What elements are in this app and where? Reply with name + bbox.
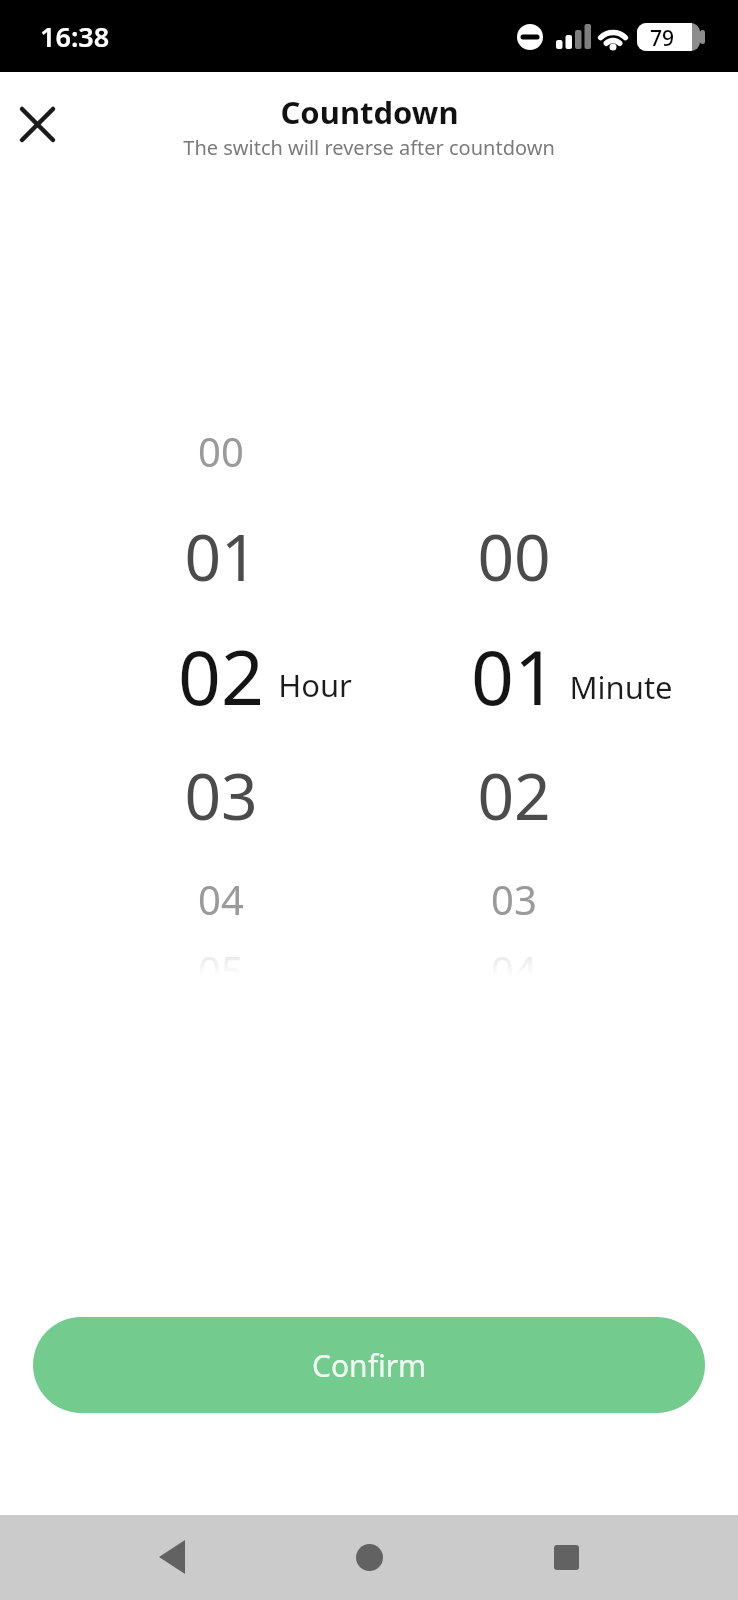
staticText: 79 [650, 24, 675, 53]
staticText: 01 [184, 513, 258, 600]
staticText: 00 [477, 513, 551, 600]
staticText: 02 [178, 625, 264, 727]
staticText: 02 [477, 752, 551, 839]
staticText: 01 [471, 625, 557, 727]
staticText: 03 [184, 752, 258, 839]
staticText: The switch will reverse after countdown [183, 134, 555, 161]
staticText: 05 [198, 943, 244, 997]
button[interactable] [12, 99, 62, 149]
staticText: 16:38 [40, 18, 110, 55]
button[interactable] [142, 1527, 202, 1587]
staticText: Hour [278, 664, 352, 706]
staticText: Minute [569, 666, 673, 708]
button[interactable] [339, 1527, 399, 1587]
staticText: 00 [198, 424, 244, 478]
staticText: 04 [198, 872, 244, 926]
button[interactable] [536, 1527, 596, 1587]
staticText: Countdown [280, 91, 459, 133]
staticText: 03 [491, 872, 537, 926]
staticText: Confirm [312, 1345, 427, 1386]
staticText: 04 [491, 943, 537, 997]
button[interactable]: Confirm [33, 1317, 705, 1413]
